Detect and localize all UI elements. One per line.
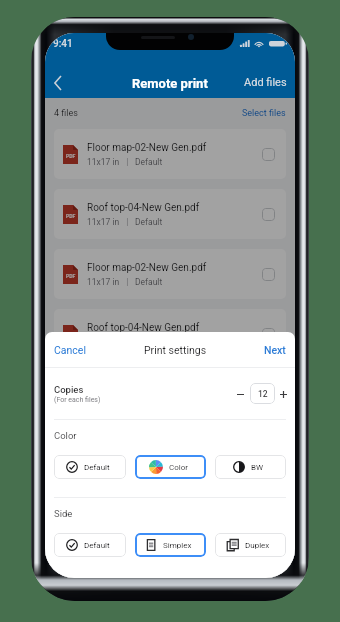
staticText: 9:41 xyxy=(53,38,73,50)
button[interactable]: Select file xyxy=(262,208,275,221)
staticText: (For each files) xyxy=(54,396,101,404)
button[interactable]: PDF xyxy=(54,129,286,179)
button[interactable]: Simplex xyxy=(135,533,206,557)
button[interactable]: BW xyxy=(215,455,286,479)
staticText: Color xyxy=(54,430,77,441)
staticText: Floor map-02-New Gen.pdf xyxy=(87,262,207,274)
button[interactable]: 12 xyxy=(250,383,275,404)
staticText: Select files xyxy=(242,108,286,119)
staticText: 12 xyxy=(258,389,268,399)
staticText: Print settings xyxy=(144,344,207,356)
staticText: BW xyxy=(251,463,264,472)
staticText: Default xyxy=(135,277,163,287)
staticText: PDF xyxy=(66,213,76,219)
staticText: PDF xyxy=(66,153,76,159)
button[interactable]: Select file xyxy=(262,328,275,341)
staticText: | xyxy=(120,277,135,287)
staticText: Default xyxy=(135,217,163,227)
button[interactable]: Next xyxy=(255,332,295,367)
staticText: Roof top-04-New Gen.pdf xyxy=(87,202,200,214)
staticText: Default xyxy=(84,541,110,550)
staticText: Color xyxy=(169,463,188,472)
button[interactable]: Increase copies xyxy=(277,383,290,405)
staticText: Duplex xyxy=(245,541,270,550)
button[interactable]: Select file xyxy=(262,148,275,161)
button[interactable]: Select files xyxy=(242,108,286,119)
staticText: | xyxy=(120,157,135,167)
staticText: PDF xyxy=(66,273,76,279)
staticText: 11x17 in xyxy=(87,277,120,287)
staticText: Side xyxy=(54,508,73,519)
button[interactable]: PDF xyxy=(54,249,286,299)
button[interactable]: PDF xyxy=(54,189,286,239)
staticText: Default xyxy=(84,463,110,472)
staticText: Next xyxy=(264,344,286,356)
staticText: Default xyxy=(135,337,163,347)
staticText: 11x17 in xyxy=(87,217,120,227)
staticText: 11x17 in xyxy=(87,157,120,167)
button[interactable]: Duplex xyxy=(215,533,286,557)
staticText: Simplex xyxy=(163,541,192,550)
staticText: Floor map-02-New Gen.pdf xyxy=(87,142,207,154)
staticText: 4 files xyxy=(54,108,78,119)
button[interactable]: Back xyxy=(45,67,72,99)
button[interactable]: Decrease copies xyxy=(234,383,247,405)
button[interactable]: Default xyxy=(54,455,126,479)
button[interactable]: Add files xyxy=(236,66,295,98)
button[interactable]: Cancel xyxy=(45,332,95,367)
button[interactable]: Color xyxy=(135,455,206,479)
staticText: Copies xyxy=(54,384,84,395)
staticText: Default xyxy=(135,157,163,167)
staticText: | xyxy=(120,217,135,227)
button[interactable]: Select file xyxy=(262,268,275,281)
staticText: Roof top-04-New Gen.pdf xyxy=(87,322,200,334)
staticText: Add files xyxy=(244,76,287,89)
staticText: Cancel xyxy=(54,344,86,356)
button[interactable]: PDF xyxy=(54,309,286,359)
staticText: Remote print xyxy=(132,76,208,91)
button[interactable]: Default xyxy=(54,533,126,557)
